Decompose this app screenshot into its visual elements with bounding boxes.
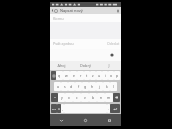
button[interactable]: .	[107, 104, 110, 113]
button[interactable]: z	[90, 71, 96, 80]
button[interactable]: n	[97, 93, 105, 102]
button[interactable]: w	[63, 71, 70, 80]
button[interactable]: Voice input	[110, 53, 114, 57]
button[interactable]: Enter	[110, 104, 120, 113]
staticText: t	[86, 73, 88, 78]
staticText: Odeslat	[107, 41, 120, 46]
staticText: .	[108, 106, 109, 111]
button[interactable]: ,	[61, 104, 64, 113]
button[interactable]: Home	[73, 114, 97, 126]
button[interactable]: Backspace	[113, 93, 120, 102]
button[interactable]: i	[102, 71, 108, 80]
button[interactable]: Symbols	[51, 104, 57, 113]
staticText: c	[76, 95, 78, 100]
staticText: f	[78, 84, 80, 89]
staticText: b	[92, 95, 95, 100]
button[interactable]: q	[56, 71, 63, 80]
staticText: Napsat nový	[60, 8, 83, 13]
staticText: n	[100, 95, 103, 100]
button[interactable]: Back	[50, 7, 54, 14]
button[interactable]: r	[77, 71, 84, 80]
staticText: i	[105, 73, 106, 78]
button[interactable]: v	[81, 93, 89, 102]
button[interactable]: b	[89, 93, 97, 102]
button[interactable]: Settings	[57, 104, 61, 113]
button[interactable]: x	[65, 93, 73, 102]
button[interactable]: o	[108, 71, 114, 80]
button[interactable]: Shift	[51, 93, 58, 102]
staticText: y	[61, 95, 63, 100]
button[interactable]: c	[73, 93, 81, 102]
staticText: u	[98, 73, 101, 78]
staticText: Komu	[53, 16, 64, 21]
button[interactable]: f	[75, 82, 82, 91]
staticText: o	[110, 73, 113, 78]
staticText: ,	[62, 106, 63, 111]
staticText: z	[92, 73, 94, 78]
staticText: l	[113, 84, 114, 89]
staticText: v	[84, 95, 86, 100]
staticText: w	[65, 73, 68, 78]
button[interactable]: p	[114, 71, 120, 80]
button[interactable]: d	[68, 82, 75, 91]
button[interactable]: Psát zprávu	[50, 39, 105, 49]
button[interactable]: l	[110, 82, 117, 91]
staticText: j	[99, 84, 100, 89]
button[interactable]: a	[54, 82, 61, 91]
staticText: Ahoj	[57, 63, 66, 68]
staticText: m	[107, 95, 111, 100]
button[interactable]: More options	[115, 7, 121, 14]
button[interactable]: m	[105, 93, 113, 102]
staticText: d	[70, 84, 73, 89]
button[interactable]: j	[96, 82, 103, 91]
staticText: h	[91, 84, 94, 89]
staticText: x	[68, 95, 70, 100]
button[interactable]: Emoji	[51, 71, 56, 80]
button[interactable]: Komu	[50, 14, 121, 22]
button[interactable]: Recents	[97, 114, 121, 126]
button[interactable]: Dobrý	[73, 61, 97, 70]
button[interactable]: y	[58, 93, 65, 102]
button[interactable]: J	[97, 61, 121, 70]
button[interactable]: k	[103, 82, 110, 91]
staticText: r	[80, 73, 82, 78]
staticText: J	[108, 63, 110, 68]
staticText: k	[106, 84, 108, 89]
button[interactable]: e	[70, 71, 77, 80]
staticText: s	[64, 84, 66, 89]
button[interactable]: Ahoj	[50, 61, 73, 70]
staticText: Psát zprávu	[53, 41, 74, 46]
button[interactable]: u	[96, 71, 102, 80]
staticText: Dobrý	[80, 63, 91, 68]
button[interactable]: t	[84, 71, 90, 80]
staticText: ?12	[52, 107, 56, 110]
button[interactable]: g	[82, 82, 89, 91]
button[interactable]: s	[61, 82, 68, 91]
button[interactable]: h	[89, 82, 96, 91]
staticText: g	[84, 84, 87, 89]
staticText: q	[58, 73, 61, 78]
staticText: p	[116, 73, 119, 78]
button[interactable]: Odeslat	[105, 39, 121, 49]
staticText: e	[73, 73, 75, 78]
staticText: a	[57, 84, 59, 89]
button[interactable]: Back	[50, 114, 73, 126]
